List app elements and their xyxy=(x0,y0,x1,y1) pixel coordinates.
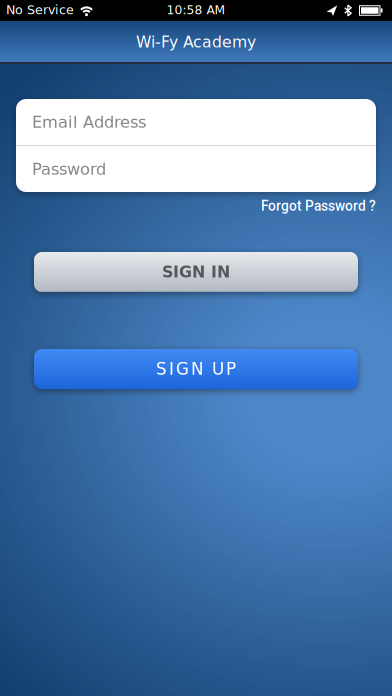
staticText: U xyxy=(212,359,224,379)
staticText: 10:58 AM xyxy=(166,3,225,17)
staticText: N xyxy=(191,359,204,379)
staticText: I xyxy=(169,359,174,379)
staticText: SIGN IN xyxy=(162,263,230,281)
staticText: P xyxy=(226,359,236,379)
button[interactable]: Email Address xyxy=(16,99,376,145)
staticText: Wi-Fy Academy xyxy=(136,33,256,51)
button[interactable]: SIGN IN xyxy=(34,252,358,292)
button[interactable]: Forgot Password ? xyxy=(16,198,376,214)
button[interactable]: Password xyxy=(16,146,376,192)
staticText: G xyxy=(176,359,189,379)
staticText: Email Address xyxy=(32,112,146,131)
staticText: Forgot Password ? xyxy=(261,198,376,214)
staticText: Password xyxy=(32,159,106,178)
staticText: No Service xyxy=(6,3,74,17)
staticText: S xyxy=(156,359,167,379)
button[interactable]: S xyxy=(34,349,358,389)
